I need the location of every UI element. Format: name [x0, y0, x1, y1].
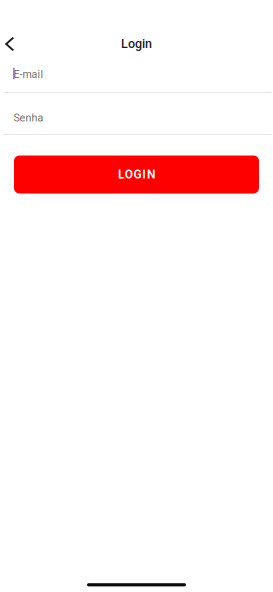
- button[interactable]: Back: [0, 33, 23, 55]
- staticText: LOGIN: [118, 167, 155, 182]
- staticText: Senha: [14, 112, 44, 124]
- staticText: E-mail: [14, 68, 44, 81]
- button[interactable]: LOGIN: [14, 155, 259, 193]
- button[interactable]: Senha: [0, 93, 273, 135]
- button[interactable]: E-mail: [0, 55, 273, 93]
- staticText: Login: [121, 36, 152, 51]
